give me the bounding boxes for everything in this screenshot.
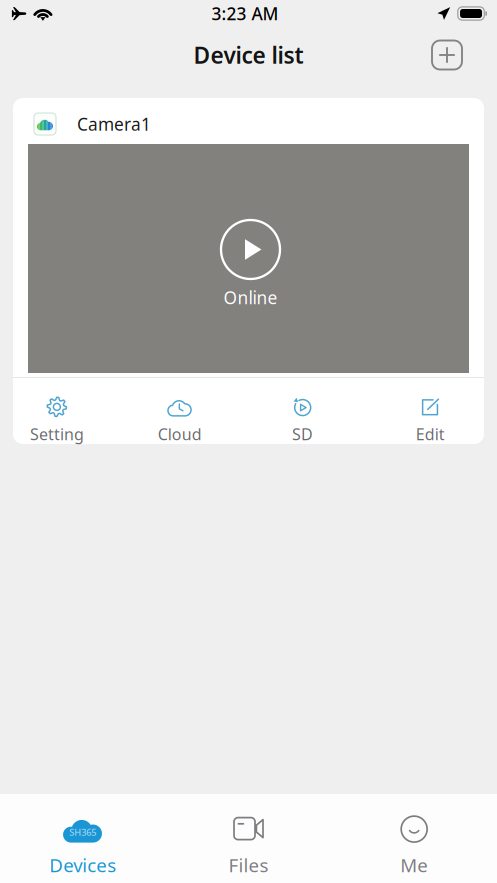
- button[interactable]: Cloud: [131, 369, 249, 453]
- staticText: Devices: [49, 853, 116, 877]
- button[interactable]: Setting: [13, 369, 131, 453]
- staticText: Camera1: [77, 112, 151, 135]
- staticText: Files: [228, 853, 268, 877]
- staticText: Me: [400, 853, 428, 877]
- staticText: 3:23 AM: [211, 2, 278, 25]
- staticText: Cloud: [158, 423, 202, 445]
- button[interactable]: SD: [248, 369, 366, 453]
- staticText: SH365: [69, 826, 96, 838]
- staticText: Setting: [30, 423, 84, 445]
- button[interactable]: SH365: [0, 792, 166, 883]
- button[interactable]: Files: [166, 792, 331, 883]
- button[interactable]: Add device: [432, 40, 462, 69]
- staticText: Edit: [416, 423, 445, 445]
- button[interactable]: Edit: [366, 369, 484, 453]
- button[interactable]: Me: [331, 792, 497, 883]
- staticText: Online: [223, 286, 277, 309]
- staticText: Device list: [193, 40, 303, 70]
- staticText: SD: [292, 423, 313, 445]
